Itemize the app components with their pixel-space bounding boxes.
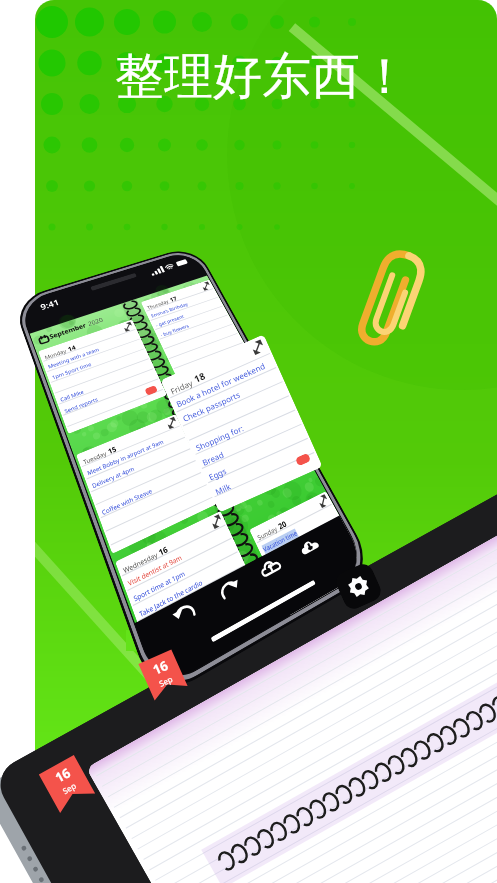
button[interactable]: Monday (38, 319, 167, 434)
staticText: Sep (60, 780, 78, 796)
staticText: 18 (190, 369, 208, 387)
staticText: 整理好东西！ (115, 46, 409, 108)
button[interactable]: Saturday (190, 376, 307, 493)
button[interactable]: Reminder (295, 453, 311, 466)
staticText: week 121 (181, 280, 205, 293)
staticText: 14 (65, 343, 77, 354)
staticText: Saturday (196, 400, 221, 416)
staticText: Vacation time (200, 405, 235, 425)
button[interactable]: Reminder (144, 385, 158, 396)
staticText: 17 (167, 295, 178, 304)
staticText: Call Mike (59, 388, 85, 404)
staticText: 20 (275, 518, 289, 532)
staticText: Shopping for: (194, 422, 246, 453)
button[interactable]: Settings (333, 561, 384, 612)
staticText: Check passports (181, 389, 242, 424)
staticText: 15 (105, 444, 118, 457)
staticText: training at 6pm (144, 602, 192, 636)
button[interactable]: Upload (255, 551, 288, 587)
staticText: 2020 (85, 315, 105, 328)
button[interactable]: Tuesday (76, 414, 217, 554)
button[interactable]: Redo (214, 573, 247, 610)
staticText: Vacation time (261, 528, 299, 554)
staticText: Friday (169, 377, 195, 396)
staticText: Bread (200, 448, 226, 468)
button[interactable]: Reminder (242, 603, 258, 619)
staticText: - buy flowers (159, 322, 190, 338)
staticText: 16 (150, 656, 171, 679)
staticText: Sunday (256, 524, 279, 543)
staticText: Sep (157, 673, 174, 689)
button[interactable]: Friday (160, 334, 323, 513)
button[interactable]: Thursday (141, 279, 247, 375)
button[interactable]: Bookmark 16 September (138, 649, 188, 701)
button[interactable]: Wednesday (115, 511, 269, 680)
button[interactable]: Undo (169, 596, 203, 635)
staticText: Emma's Birthday (150, 301, 190, 319)
staticText: September (46, 321, 88, 341)
staticText: - get present (154, 313, 186, 329)
staticText: Send reports (63, 396, 99, 415)
staticText: 19 (217, 396, 229, 407)
staticText: 16 (52, 763, 73, 786)
staticText: Monday (44, 347, 68, 361)
staticText: Coffee with Steave (101, 487, 154, 517)
button[interactable]: Sunday (249, 491, 369, 615)
staticText: Take Jack to the cardio (138, 577, 204, 620)
staticText: Vine with Susane after 8pm (156, 616, 238, 669)
staticText: Wednesday (122, 550, 159, 576)
staticText: Visit dentist at 9am (127, 552, 184, 588)
staticText: Book a hotel for weekend (174, 360, 267, 409)
staticText: Meeting with a team (47, 346, 101, 370)
staticText: 9:41 (39, 296, 61, 312)
button[interactable]: Download (295, 531, 326, 565)
staticText: Thursday (146, 298, 170, 311)
staticText: Tuesday (82, 449, 108, 467)
staticText: Milk (213, 480, 232, 497)
staticText: Eggs (207, 465, 229, 482)
staticText: Meet Bobby in airport at 9am (86, 438, 165, 477)
staticText: 16 (155, 544, 170, 559)
button[interactable]: Bookmark 16 September (39, 755, 95, 813)
staticText: Sport time at 1pm (132, 568, 187, 604)
staticText: 1pm Sport time (51, 361, 92, 381)
staticText: Delivery at 4pm (91, 464, 136, 490)
button[interactable]: Reminder (284, 446, 298, 458)
